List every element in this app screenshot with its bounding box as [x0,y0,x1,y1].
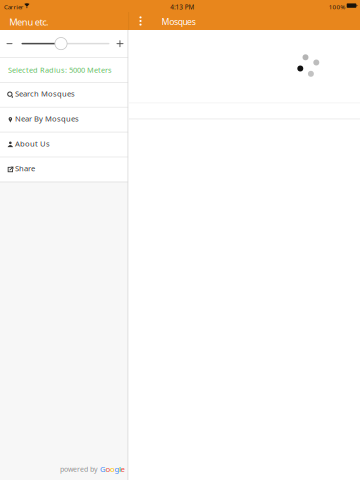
button[interactable]: Share [0,157,128,182]
button[interactable]: Mosques [162,12,196,30]
staticText: Near By Mosques [15,113,79,124]
staticText: G [100,464,106,474]
staticText: Selected Radius: 5000 Meters [8,65,112,75]
button[interactable]: Search Mosques [0,83,128,107]
button[interactable]: More options [133,12,147,30]
staticText: o [105,464,110,474]
staticText: 4:13 PM [170,3,194,11]
staticText: About Us [15,138,50,149]
button[interactable]: Menu etc. [0,12,128,30]
staticText: 100% [329,3,345,11]
staticText: Menu etc. [9,15,49,28]
staticText: Mosques [162,16,196,27]
staticText: Carrier [4,3,24,11]
staticText: Search Mosques [15,88,75,99]
staticText: l [119,464,121,474]
staticText: powered by [60,464,98,474]
button[interactable]: Near By Mosques [0,108,128,132]
staticText: o [110,464,115,474]
staticText: g [114,464,119,474]
button[interactable]: About Us [0,133,128,157]
staticText: Share [15,163,35,174]
staticText: e [120,464,124,474]
